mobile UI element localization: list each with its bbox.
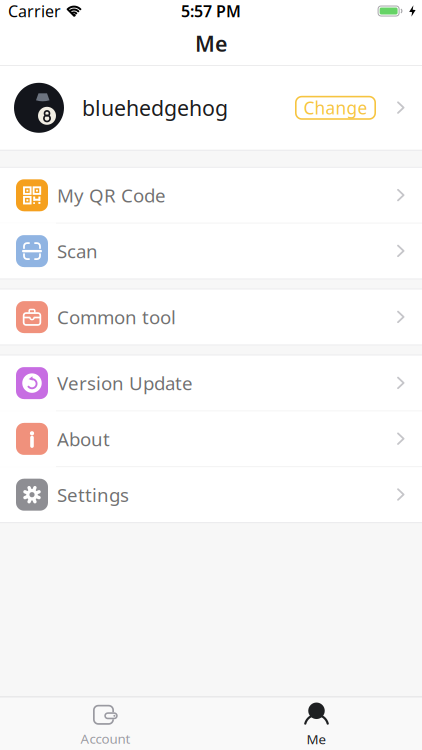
staticText: Carrier [8,0,61,22]
staticText: Me [306,730,326,748]
button[interactable]: My QR Code [0,168,422,223]
staticText: Common tool [57,305,176,329]
button[interactable]: Me [211,697,422,750]
button[interactable]: Change [295,96,376,120]
staticText: bluehedgehog [82,94,228,122]
staticText: Settings [57,482,129,507]
staticText: 5:57 PM [181,0,241,22]
button[interactable]: Version Update [0,356,422,411]
button[interactable]: Account [0,698,211,749]
button[interactable]: Settings [0,467,422,522]
staticText: About [57,426,110,451]
staticText: My QR Code [57,183,166,208]
button[interactable]: Scan [0,224,422,279]
staticText: Change [303,96,367,119]
staticText: Me [195,29,227,58]
button[interactable]: Common tool [0,290,422,345]
button[interactable]: bluehedgehog [0,66,422,150]
staticText: Account [80,730,130,747]
staticText: Version Update [57,371,193,395]
button[interactable]: About [0,411,422,466]
staticText: Scan [57,239,98,263]
